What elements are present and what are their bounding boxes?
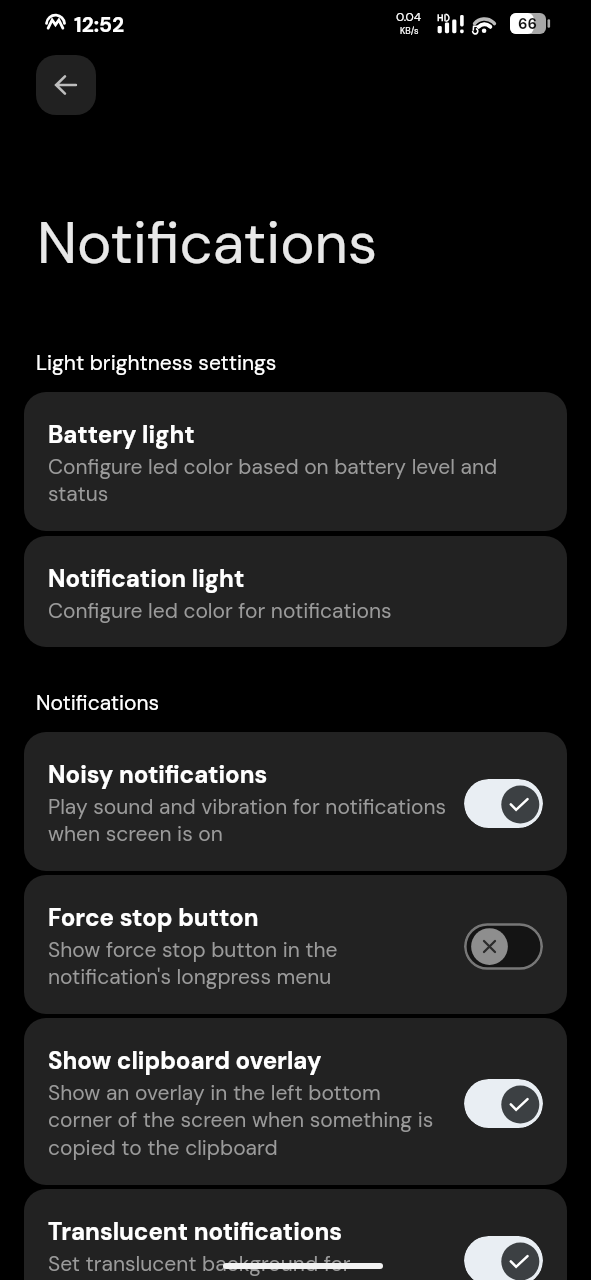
button[interactable]: Back (36, 55, 96, 115)
staticText: Translucent notifications (48, 1216, 342, 1247)
staticText: Notifications (37, 205, 377, 281)
staticText: Battery light (48, 419, 195, 450)
staticText: Show clipboard overlay (48, 1045, 322, 1076)
staticText: 12:52 (74, 11, 125, 38)
button[interactable]: Battery light (24, 392, 567, 531)
button[interactable]: Show clipboard overlay (24, 1018, 567, 1185)
staticText: Noisy notifications (48, 759, 268, 790)
staticText: KB/s (400, 25, 419, 37)
button[interactable]: Enabled toggle (464, 779, 543, 828)
button[interactable]: Force stop button (24, 875, 567, 1014)
button[interactable]: Noisy notifications (24, 732, 567, 871)
staticText: Configure led color based on battery lev… (48, 453, 543, 508)
button[interactable]: Enabled toggle (464, 1079, 543, 1128)
staticText: Notifications (36, 689, 160, 716)
button[interactable]: Notification light (24, 536, 567, 647)
staticText: Play sound and vibration for notificatio… (48, 793, 448, 848)
staticText: Show an overlay in the left bottom corne… (48, 1079, 448, 1162)
button[interactable]: Translucent notifications (24, 1189, 567, 1280)
button[interactable]: Enabled toggle (464, 1236, 543, 1280)
staticText: Light brightness settings (36, 349, 277, 376)
staticText: 66 (518, 14, 538, 34)
staticText: 0.04 (396, 9, 422, 25)
button[interactable]: Disabled toggle (464, 922, 543, 971)
staticText: Configure led color for notifications (48, 597, 392, 624)
staticText: Set translucent background for notificat… (48, 1250, 448, 1280)
staticText: Notification light (48, 563, 245, 594)
staticText: Force stop button (48, 902, 259, 933)
staticText: Show force stop button in the notificati… (48, 936, 448, 991)
